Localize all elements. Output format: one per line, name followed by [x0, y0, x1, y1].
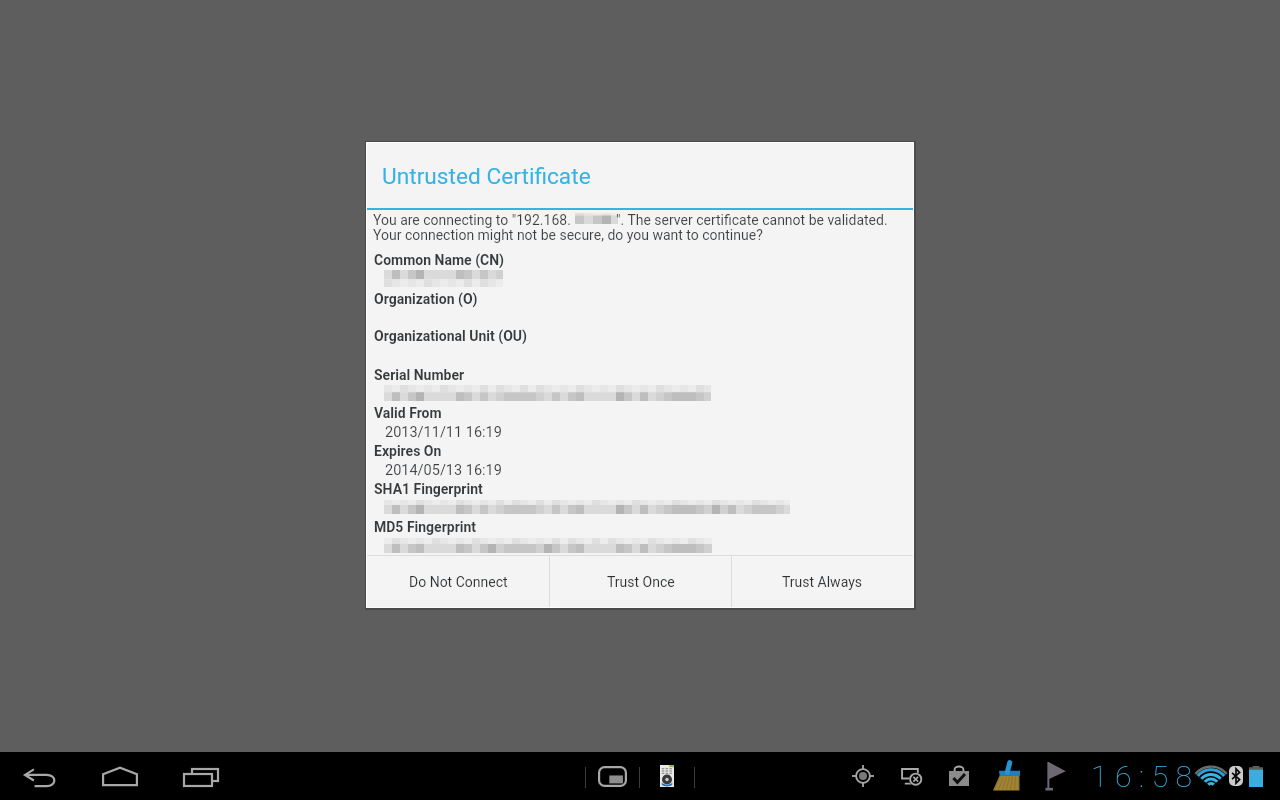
button[interactable]: Cast screen	[889, 752, 934, 800]
staticText: Trust Always	[782, 574, 863, 590]
staticText: Your connection might not be secure, do …	[373, 227, 763, 243]
button[interactable]: Trust Always	[732, 556, 913, 607]
staticText: Common Name (CN)	[374, 252, 505, 268]
staticText: 2014/05/13 16:19	[385, 462, 502, 479]
staticText: MD5 Fingerprint	[374, 519, 477, 535]
button[interactable]: Back	[10, 752, 71, 800]
button[interactable]: Cleaner	[982, 752, 1031, 800]
other: Wi-Fi	[1195, 752, 1226, 800]
button[interactable]: Remote control app	[646, 752, 688, 800]
staticText: Do Not Connect	[409, 574, 508, 590]
other: Bluetooth	[1226, 752, 1246, 800]
staticText: 16:58	[1091, 759, 1200, 794]
button[interactable]: Recent apps	[168, 752, 234, 800]
staticText: ". The server certificate cannot be vali…	[616, 212, 888, 228]
button[interactable]: Trust Once	[550, 556, 731, 607]
other: Battery	[1246, 752, 1266, 800]
staticText: Expires On	[374, 443, 442, 459]
staticText: Organization (O)	[374, 291, 478, 307]
staticText: You are connecting to "192.168.	[373, 212, 571, 228]
button[interactable]: GPS	[841, 752, 885, 800]
staticText: Untrusted Certificate	[382, 163, 591, 190]
button[interactable]: Do Not Connect	[367, 556, 549, 607]
button[interactable]: Play Store	[936, 752, 982, 800]
button[interactable]: Home	[86, 752, 154, 800]
staticText: 2013/11/11 16:19	[385, 424, 502, 441]
button[interactable]: Flag	[1034, 752, 1077, 800]
button[interactable]: Keyboard	[584, 752, 641, 800]
staticText: Valid From	[374, 405, 442, 421]
staticText: Organizational Unit (OU)	[374, 328, 527, 344]
staticText: SHA1 Fingerprint	[374, 481, 483, 497]
staticText: Serial Number	[374, 367, 465, 383]
staticText: Trust Once	[607, 574, 675, 590]
